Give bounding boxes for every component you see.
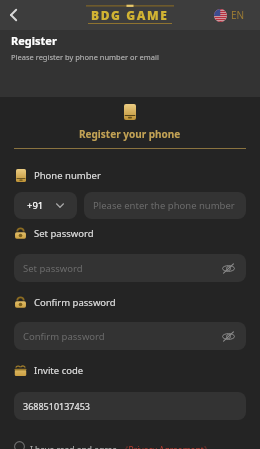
staticText: Set password: [34, 227, 94, 240]
staticText: I have read and agree: [30, 444, 120, 449]
button[interactable]: Confirm password: [14, 322, 246, 350]
staticText: BDG GAME: [91, 7, 169, 23]
staticText: Please register by phone number or email: [11, 52, 159, 62]
staticText: Confirm password: [23, 330, 105, 343]
button[interactable]: +91: [14, 192, 77, 219]
button[interactable]: Show password: [220, 260, 236, 276]
staticText: Confirm password: [34, 296, 116, 309]
staticText: Please enter the phone number: [93, 199, 235, 212]
button[interactable]: EN: [214, 8, 245, 22]
staticText: Register your phone: [79, 127, 181, 141]
staticText: Phone number: [34, 169, 101, 182]
button[interactable]: 3688510137453: [14, 392, 246, 420]
staticText: EN: [231, 8, 245, 22]
staticText: Set password: [23, 262, 83, 275]
button[interactable]: Back: [0, 0, 28, 30]
staticText: +91: [27, 199, 44, 212]
button[interactable]: Please enter the phone number: [84, 192, 246, 219]
staticText: 《Privacy Agreement》: [120, 444, 213, 449]
staticText: Register: [11, 33, 57, 48]
button[interactable]: I have read and agree: [14, 444, 246, 449]
staticText: Invite code: [34, 364, 84, 377]
button[interactable]: Set password: [14, 254, 246, 282]
button[interactable]: Show password: [220, 328, 236, 344]
staticText: 3688510137453: [23, 400, 90, 412]
button[interactable]: Register your phone: [14, 104, 246, 148]
